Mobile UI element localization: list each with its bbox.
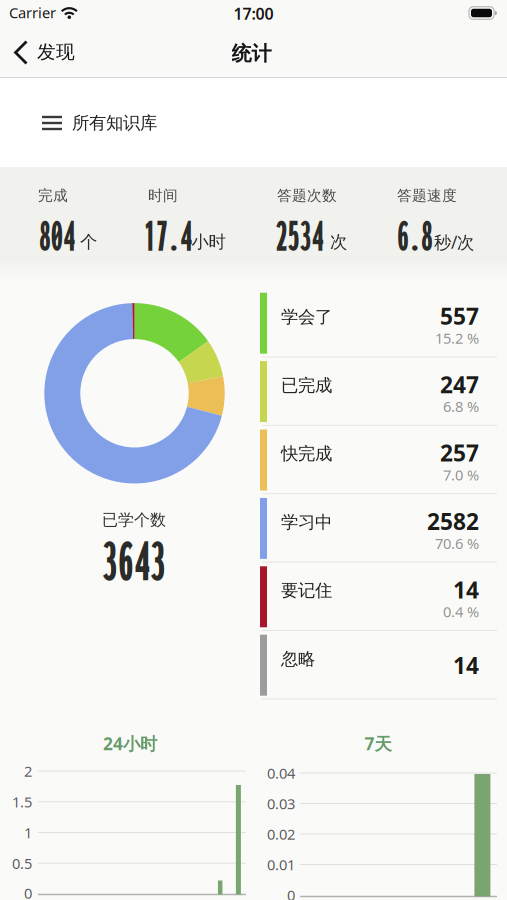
staticText: 已学个数 — [102, 510, 166, 530]
staticText: 0.5 — [12, 853, 32, 873]
staticText: 1 — [24, 823, 32, 842]
staticText: 0 — [24, 883, 32, 900]
staticText: 0.02 — [267, 824, 295, 844]
staticText: 17:00 — [233, 3, 273, 24]
staticText: 557 — [440, 301, 479, 331]
staticText: 70.6 % — [435, 533, 479, 553]
staticText: 发现 — [37, 40, 75, 63]
staticText: 忽略 — [281, 648, 315, 670]
staticText: 1.5 — [12, 792, 32, 811]
staticText: Carrier — [9, 3, 56, 22]
staticText: 2 — [24, 761, 32, 781]
staticText: 0.03 — [267, 794, 295, 813]
staticText: 快完成 — [281, 443, 332, 464]
staticText: 24小时 — [103, 732, 157, 755]
staticText: 答题速度 — [397, 186, 457, 204]
staticText: 17.4 — [144, 210, 192, 260]
staticText: 2582 — [427, 506, 479, 536]
staticText: 次 — [330, 231, 347, 253]
staticText: 学会了 — [281, 306, 332, 328]
staticText: 秒/次 — [434, 230, 474, 253]
staticText: 3643 — [102, 527, 166, 592]
staticText: 257 — [440, 438, 479, 468]
staticText: 7.0 % — [443, 465, 479, 485]
staticText: 6.8 — [397, 210, 433, 260]
staticText: 学习中 — [281, 512, 332, 533]
staticText: 统计 — [231, 41, 271, 66]
staticText: 个 — [80, 231, 97, 253]
button[interactable]: 发现 — [0, 28, 100, 77]
staticText: 14 — [453, 650, 479, 680]
staticText: 15.2 % — [435, 328, 479, 348]
staticText: 完成 — [38, 186, 68, 204]
staticText: 0.4 % — [443, 602, 479, 621]
staticText: 14 — [453, 574, 479, 605]
staticText: 0.01 — [267, 855, 295, 874]
staticText: 要记住 — [281, 580, 332, 601]
staticText: 804 — [39, 210, 75, 260]
staticText: 答题次数 — [277, 186, 337, 204]
staticText: 6.8 % — [443, 397, 479, 416]
staticText: 时间 — [148, 186, 178, 204]
button[interactable]: 所有知识库 — [0, 78, 507, 167]
staticText: 0 — [287, 885, 295, 900]
staticText: 已完成 — [281, 375, 332, 396]
staticText: 所有知识库 — [72, 112, 157, 134]
staticText: 247 — [440, 369, 479, 399]
staticText: 7天 — [364, 732, 391, 755]
staticText: 2534 — [275, 210, 323, 260]
staticText: 小时 — [191, 231, 225, 253]
staticText: 0.04 — [267, 763, 295, 783]
